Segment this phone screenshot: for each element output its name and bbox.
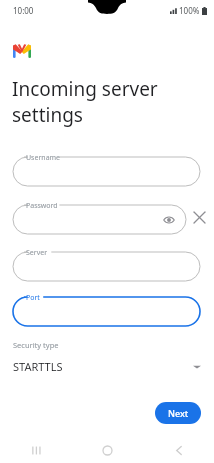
staticText: Username xyxy=(26,153,61,163)
staticText: STARTTLS xyxy=(13,359,63,374)
button[interactable]: Next xyxy=(155,402,201,424)
button[interactable]: Show password xyxy=(161,212,177,228)
staticText: 10:00 xyxy=(13,5,34,16)
button[interactable]: Username xyxy=(13,152,200,186)
button[interactable]: Home xyxy=(72,437,143,463)
staticText: Port xyxy=(26,293,40,303)
staticText: Next xyxy=(168,407,189,419)
button[interactable]: Port xyxy=(13,292,200,326)
button[interactable]: STARTTLS xyxy=(13,359,201,374)
staticText: Incoming server settings xyxy=(12,76,207,128)
staticText: Security type xyxy=(13,340,59,350)
button[interactable]: Recents xyxy=(0,437,72,463)
staticText: Password xyxy=(26,201,58,211)
button[interactable]: Clear password xyxy=(189,207,209,227)
button[interactable]: Server xyxy=(13,247,200,281)
button[interactable]: Back xyxy=(143,437,214,463)
button[interactable]: Password xyxy=(13,200,186,234)
staticText: 100% xyxy=(179,5,200,16)
staticText: Server xyxy=(26,248,48,258)
